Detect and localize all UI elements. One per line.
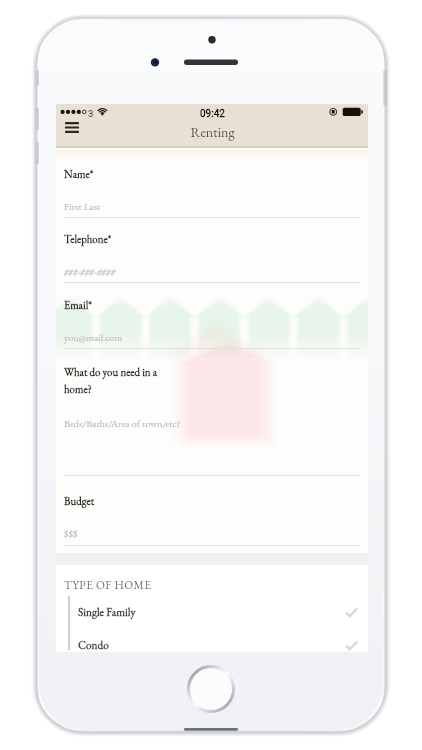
- staticText: Email*: [64, 298, 92, 312]
- staticText: Budget: [64, 494, 95, 508]
- staticText: 09:42: [200, 108, 225, 120]
- staticText: 3: [88, 108, 94, 119]
- button[interactable]: Single Family: [56, 597, 368, 629]
- staticText: Name*: [64, 167, 94, 181]
- staticText: First Last: [64, 200, 101, 213]
- staticText: Single Family: [78, 605, 136, 620]
- staticText: you@mail.com: [64, 331, 123, 344]
- staticText: ###-###-####: [64, 265, 116, 278]
- staticText: What do you need in a: [64, 365, 158, 379]
- staticText: Condo: [78, 638, 109, 652]
- staticText: $$$: [64, 527, 78, 540]
- button[interactable]: Condo: [56, 630, 368, 652]
- staticText: TYPE OF HOME: [64, 577, 152, 592]
- staticText: home?: [64, 382, 92, 396]
- button[interactable]: Menu: [60, 119, 84, 136]
- staticText: Renting: [190, 123, 235, 141]
- staticText: Beds/Baths/Area of town/etc?: [64, 417, 181, 430]
- staticText: Telephone*: [64, 232, 112, 246]
